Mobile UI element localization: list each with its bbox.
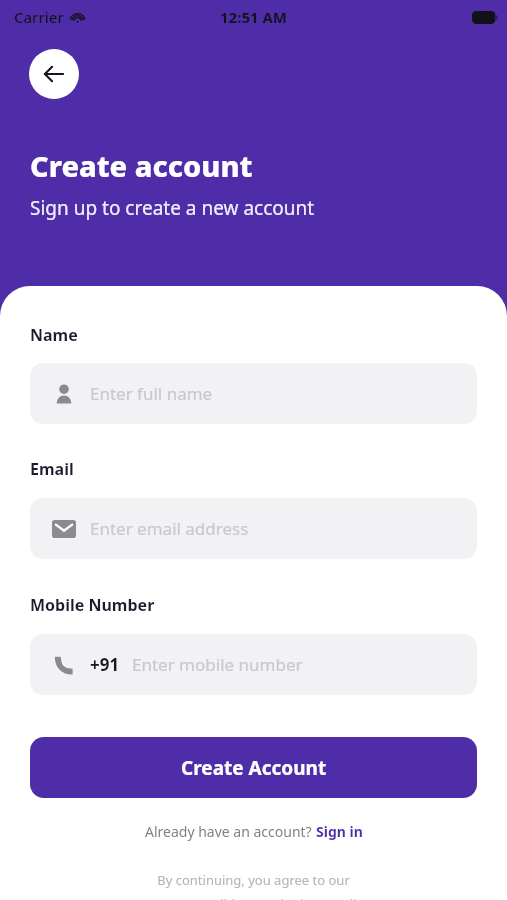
staticText: 12:51 AM	[220, 7, 287, 27]
button[interactable]: Enter email address	[30, 498, 477, 559]
staticText: Create account	[30, 146, 253, 185]
staticText: Name	[30, 324, 78, 346]
staticText: Enter full name	[90, 382, 213, 405]
button[interactable]: Create Account	[30, 737, 477, 798]
staticText: Email	[30, 458, 74, 480]
button[interactable]: Terms & Conditions and Privacy Policy	[30, 895, 477, 900]
staticText: Carrier	[14, 7, 64, 27]
staticText: Sign in	[316, 822, 363, 841]
staticText: Mobile Number	[30, 594, 155, 616]
staticText: Create Account	[181, 755, 327, 781]
staticText: Enter email address	[90, 517, 249, 540]
button[interactable]: +91	[30, 634, 477, 695]
button[interactable]: Back	[29, 49, 79, 99]
staticText: +91	[90, 653, 120, 676]
button[interactable]: Already have an account?	[30, 822, 477, 841]
staticText: Already have an account?	[145, 822, 316, 841]
button[interactable]: Enter full name	[30, 363, 477, 424]
staticText: Sign up to create a new account	[30, 195, 315, 221]
staticText: By continuing, you agree to our	[30, 871, 477, 889]
staticText: Enter mobile number	[132, 653, 303, 676]
